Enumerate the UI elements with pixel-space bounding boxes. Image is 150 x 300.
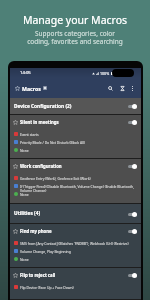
button[interactable]: Toggle xyxy=(128,163,137,169)
staticText: Supports categories, color coding, favor… xyxy=(0,29,150,46)
staticText: SMS from [Any Contact] (Matches 'FNDME')… xyxy=(20,241,129,246)
staticText: Flip Device (Face Up + Face Down) xyxy=(20,285,74,290)
staticText: None xyxy=(20,192,29,197)
button[interactable]: Utilities (4) xyxy=(10,204,141,223)
button[interactable]: Work configuration xyxy=(10,159,141,204)
button[interactable]: Sort xyxy=(117,83,127,93)
staticText: Device Configuration (2) xyxy=(14,103,72,110)
button[interactable]: Toggle xyxy=(128,211,137,217)
staticText: None xyxy=(20,257,29,262)
button[interactable]: Search xyxy=(105,83,115,93)
staticText: Geofence Entry (Work), Geofence Exit (Wo… xyxy=(20,176,91,181)
staticText: Work configuration xyxy=(20,163,62,169)
staticText: Volume Change, Play Beginning xyxy=(20,249,71,254)
staticText: If (Trigger Fired) (Disable Bluetooth, V… xyxy=(20,184,135,192)
button[interactable]: Toggle xyxy=(128,272,137,278)
button[interactable]: Silent in meetings xyxy=(10,115,141,159)
staticText: Flip to reject call xyxy=(20,272,56,278)
staticText: Manage your Macros xyxy=(0,13,150,27)
staticText: 100% xyxy=(100,71,110,76)
staticText: Utilities (4) xyxy=(14,210,41,217)
staticText: Priority Mode / Do Not Disturb (Block Al… xyxy=(20,140,85,145)
button[interactable]: Toggle xyxy=(128,103,137,109)
button[interactable]: Toggle xyxy=(128,228,137,234)
staticText: None xyxy=(20,148,29,153)
staticText: Event starts xyxy=(20,132,39,137)
staticText: Find my phone xyxy=(20,228,52,234)
button[interactable]: More options xyxy=(128,84,137,93)
staticText: Macros xyxy=(22,85,41,92)
button[interactable]: Flip to reject call xyxy=(10,268,141,300)
button[interactable]: Find my phone xyxy=(10,224,141,268)
button[interactable]: Device Configuration (2) xyxy=(10,98,141,114)
staticText: Silent in meetings xyxy=(20,119,59,125)
button[interactable]: Toggle xyxy=(128,119,137,125)
staticText: 14:05 xyxy=(20,70,31,76)
